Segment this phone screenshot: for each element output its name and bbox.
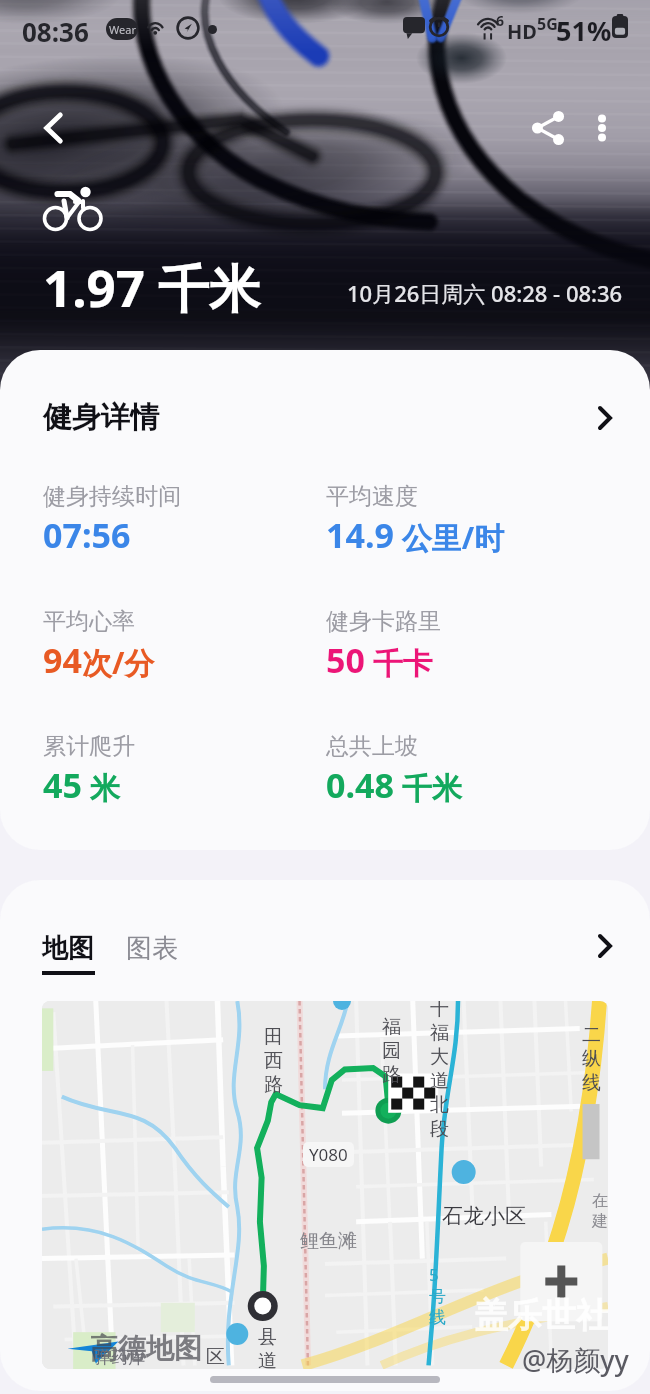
staticText: 线 xyxy=(582,1071,601,1095)
button[interactable]: Route map xyxy=(42,1001,608,1369)
staticText: 千卡 xyxy=(365,642,433,683)
button[interactable]: Back xyxy=(28,102,80,154)
staticText: 0.48 xyxy=(326,762,394,808)
staticText: 鲤鱼滩 xyxy=(300,1229,357,1253)
staticText: 平均速度 xyxy=(326,482,418,511)
button[interactable]: Share xyxy=(524,104,572,152)
button[interactable]: Open map xyxy=(598,934,612,958)
staticText: Wear xyxy=(109,22,136,37)
staticText: HD xyxy=(507,18,537,45)
staticText: 94 xyxy=(43,637,82,683)
staticText: 50 xyxy=(326,637,365,683)
staticText: 5 xyxy=(429,1263,439,1286)
staticText: 道 xyxy=(430,1069,449,1093)
staticText: 园 xyxy=(382,1039,401,1063)
staticText: 道 xyxy=(258,1349,277,1369)
staticText: 51% xyxy=(556,12,612,49)
staticText: 45 xyxy=(43,762,82,808)
staticText: 08:36 xyxy=(22,14,89,49)
staticText: 在 xyxy=(592,1191,608,1211)
button[interactable]: 地图 xyxy=(42,932,95,975)
staticText: 14.9 xyxy=(326,512,394,558)
staticText: 十 xyxy=(430,1001,449,1021)
staticText: 1.97 千米 xyxy=(43,252,261,322)
button[interactable]: 图表 xyxy=(126,932,178,965)
staticText: 大 xyxy=(430,1045,449,1069)
staticText: 建 xyxy=(592,1211,608,1231)
staticText: 累计爬升 xyxy=(43,732,135,761)
staticText: 区 xyxy=(206,1345,225,1369)
staticText: 盖乐世社区 xyxy=(474,1294,608,1337)
staticText: 米 xyxy=(82,767,120,808)
staticText: 10月26日周六 08:28 - 08:36 xyxy=(347,278,623,308)
staticText: @杨颜yy xyxy=(522,1341,629,1378)
staticText: 千米 xyxy=(394,767,462,808)
button[interactable]: More options xyxy=(578,104,626,152)
staticText: 二 xyxy=(582,1023,601,1047)
staticText: 纵 xyxy=(582,1047,601,1071)
staticText: 石龙小区 xyxy=(442,1203,526,1229)
staticText: 北 xyxy=(430,1093,449,1117)
staticText: 健身持续时间 xyxy=(43,482,181,511)
staticText: 路 xyxy=(264,1073,283,1097)
staticText: 公里/时 xyxy=(394,517,505,558)
staticText: 总共上坡 xyxy=(326,732,418,761)
staticText: 平均心率 xyxy=(43,607,135,636)
button[interactable]: 健身详情 xyxy=(0,350,650,482)
staticText: 段 xyxy=(430,1117,449,1141)
staticText: 田 xyxy=(264,1025,283,1049)
staticText: 弹药库 xyxy=(94,1347,145,1368)
staticText: 健身卡路里 xyxy=(326,607,441,636)
staticText: 号 xyxy=(429,1286,446,1307)
staticText: 5G xyxy=(537,13,558,35)
staticText: 福 xyxy=(430,1021,449,1045)
staticText: 线 xyxy=(429,1307,446,1328)
staticText: 福 xyxy=(382,1015,401,1039)
staticText: 07:56 xyxy=(43,512,131,558)
staticText: Y080 xyxy=(309,1143,348,1166)
staticText: 次/分 xyxy=(82,642,155,683)
staticText: 6 xyxy=(496,11,505,30)
staticText: 健身详情 xyxy=(43,399,159,436)
staticText: 县 xyxy=(258,1325,277,1349)
staticText: 西 xyxy=(264,1049,283,1073)
staticText: 地图 xyxy=(42,932,94,965)
staticText: 高德地图 xyxy=(90,1331,202,1366)
staticText: 路 xyxy=(382,1063,401,1087)
